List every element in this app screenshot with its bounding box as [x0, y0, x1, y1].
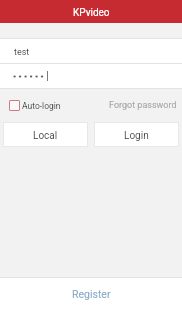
button[interactable]: Local: [3, 122, 88, 147]
staticText: Login: [124, 130, 149, 142]
staticText: Register: [72, 288, 111, 300]
staticText: test: [14, 47, 30, 58]
staticText: Auto-login: [22, 101, 61, 111]
other: Auto-login checkbox: [9, 100, 20, 111]
button[interactable]: Login: [94, 122, 179, 147]
button[interactable]: Register: [0, 278, 182, 310]
staticText: Local: [33, 130, 58, 142]
button[interactable]: Forgot password: [103, 100, 182, 111]
button[interactable]: Password: [0, 64, 182, 88]
button[interactable]: Auto-login checkbox: [0, 100, 65, 111]
staticText: KPvideo: [73, 7, 110, 19]
staticText: Forgot password: [109, 100, 177, 111]
button[interactable]: Username: [0, 39, 182, 63]
